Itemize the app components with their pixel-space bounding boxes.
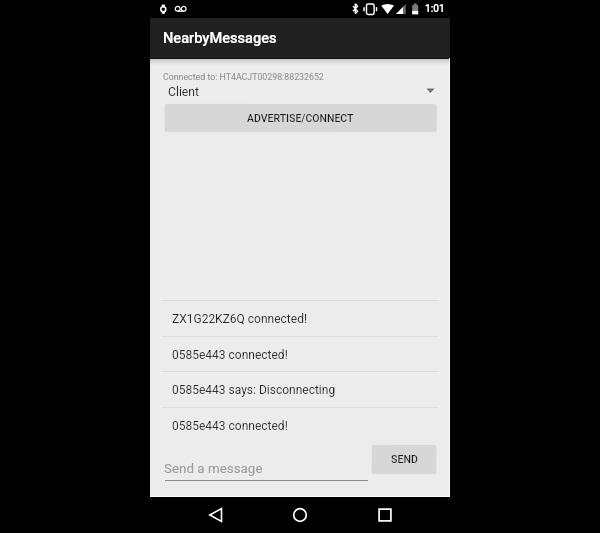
button[interactable]: Client [150,83,450,101]
staticText: 0585e443 connected! [172,419,288,433]
staticText: NearbyMessages [163,29,277,46]
staticText: SEND [391,453,418,465]
button[interactable]: Recent apps [364,498,406,532]
button[interactable]: ADVERTISE/CONNECT [165,104,436,131]
button[interactable]: 0585e443 connected! [150,408,450,443]
button[interactable]: Back [195,498,237,532]
staticText: Send a message [164,461,263,477]
button[interactable]: Send a message [164,458,368,484]
button[interactable]: 0585e443 says: Disconnecting [150,372,450,407]
button[interactable]: ZX1G22KZ6Q connected! [150,301,450,336]
button[interactable]: SEND [372,445,436,473]
staticText: Connected to: HT4ACJT00298:88232652 [163,72,324,82]
staticText: ZX1G22KZ6Q connected! [172,312,307,326]
button[interactable]: 0585e443 connected! [150,337,450,372]
staticText: 0585e443 says: Disconnecting [172,383,336,397]
staticText: 1:01 [425,3,445,15]
staticText: 0585e443 connected! [172,348,288,362]
staticText: Client [168,85,200,99]
staticText: ADVERTISE/CONNECT [247,112,354,124]
button[interactable]: Home [279,498,321,532]
